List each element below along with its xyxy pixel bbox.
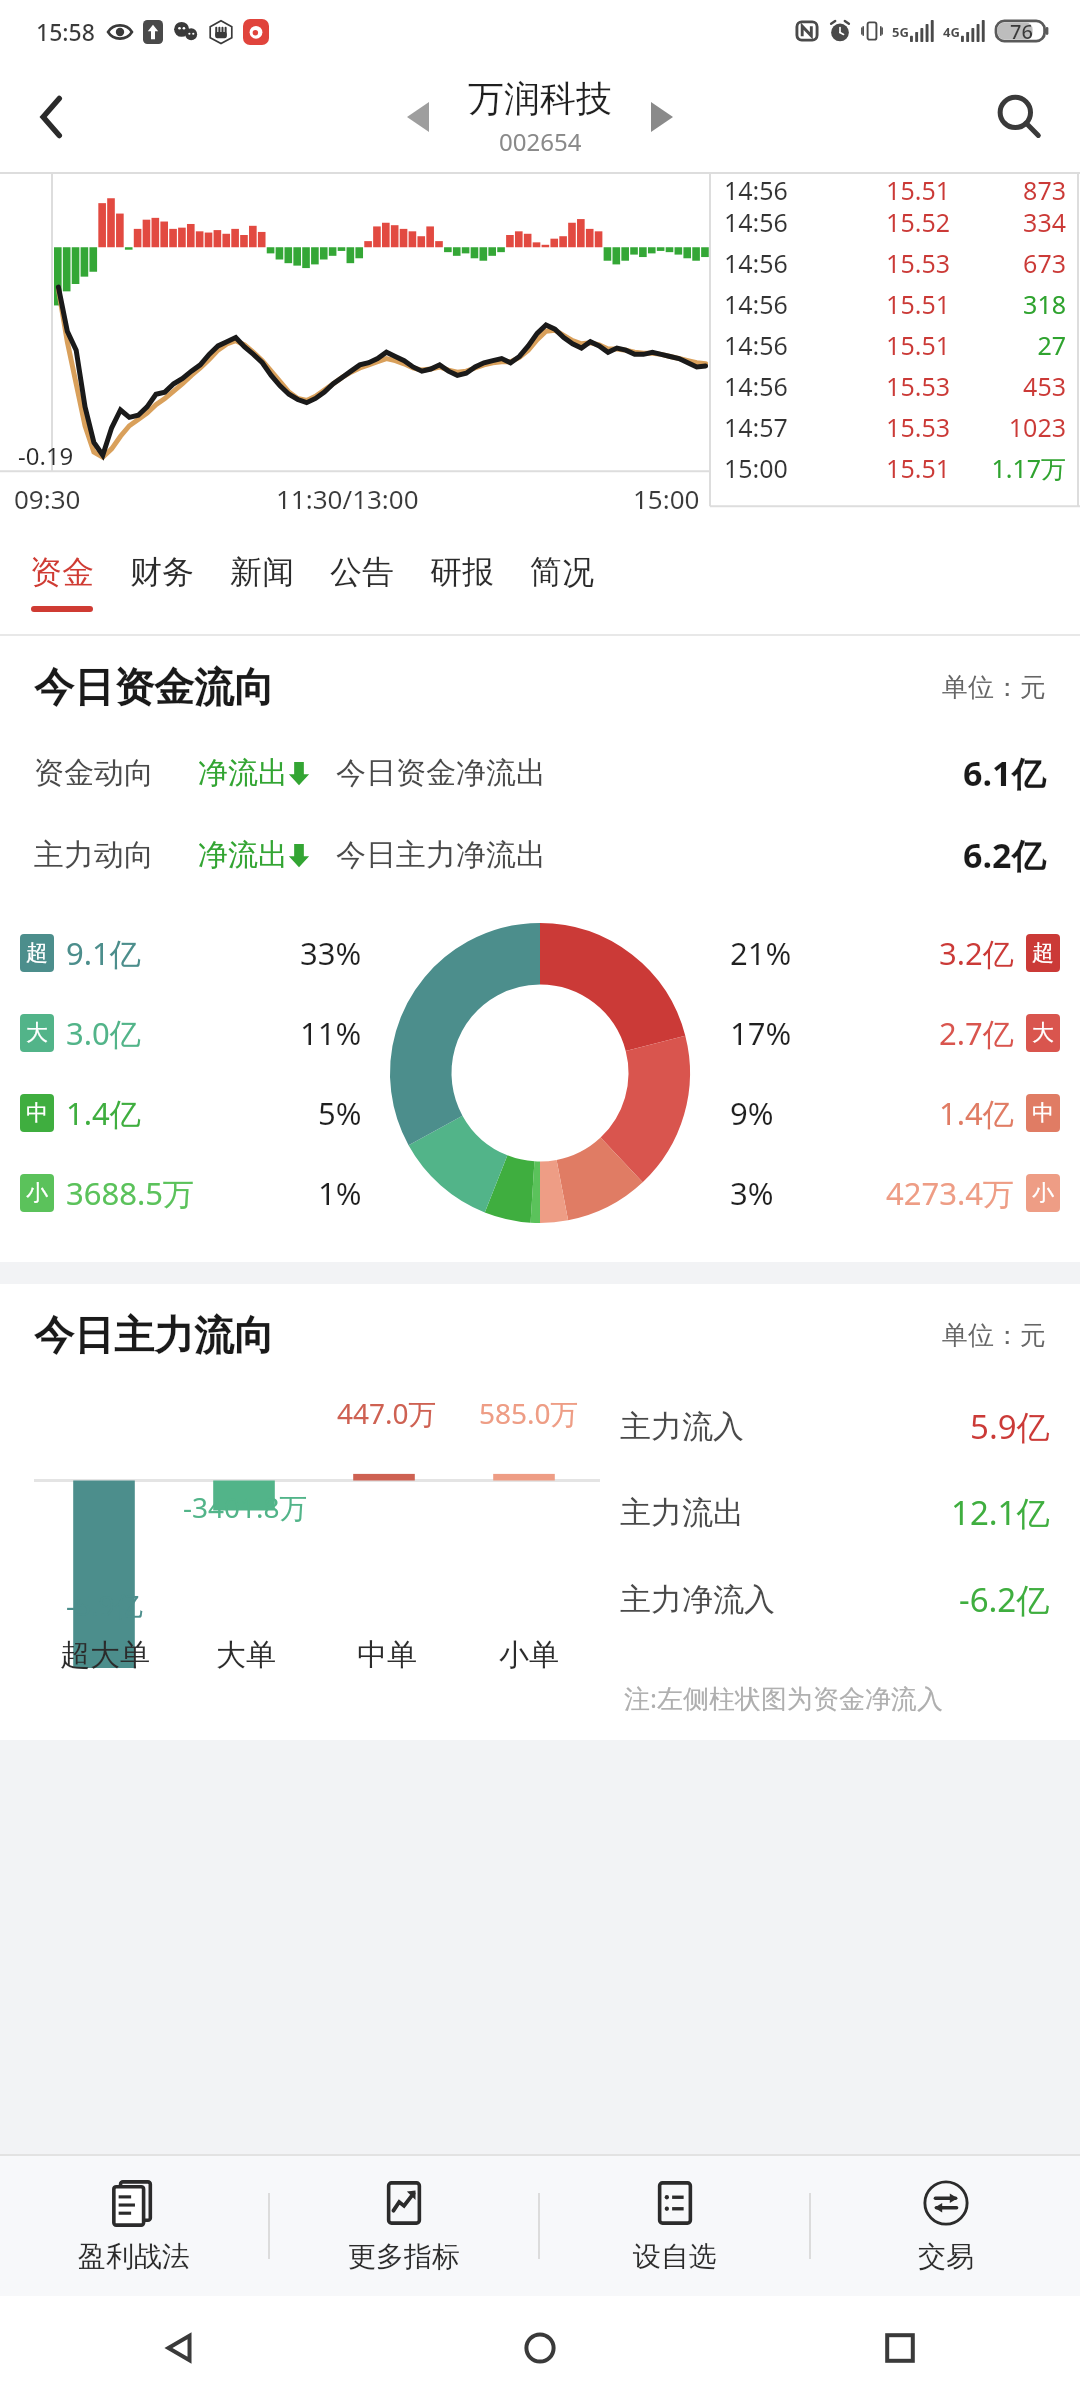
staticText: 主力净流入 bbox=[620, 1580, 775, 1619]
staticText: 002654 bbox=[499, 125, 582, 158]
staticText: 简况 bbox=[530, 552, 594, 592]
staticText: 研报 bbox=[430, 552, 494, 592]
staticText: 15:58 bbox=[36, 16, 95, 47]
staticText: 14:56 bbox=[724, 205, 840, 239]
button[interactable]: Next stock bbox=[634, 89, 690, 145]
staticText: 673 bbox=[956, 246, 1066, 280]
staticText: 3.2亿 bbox=[939, 932, 1014, 974]
staticText: 15.51 bbox=[840, 173, 950, 201]
staticText: 主力动向 bbox=[34, 836, 154, 874]
staticText: 3.0亿 bbox=[66, 1012, 141, 1054]
staticText: 27 bbox=[956, 328, 1066, 362]
staticText: 主力流出 bbox=[620, 1493, 744, 1532]
button[interactable]: 设自选 bbox=[540, 2156, 809, 2296]
staticText: -3401.8万 bbox=[183, 1488, 308, 1526]
button[interactable]: 更多指标 bbox=[270, 2156, 538, 2296]
staticText: 新闻 bbox=[230, 552, 294, 592]
staticText: 15:00 bbox=[633, 481, 700, 516]
staticText: 单位：元 bbox=[942, 671, 1046, 704]
staticText: 1.4亿 bbox=[66, 1092, 141, 1134]
staticText: 1023 bbox=[956, 410, 1066, 444]
staticText: 873 bbox=[956, 173, 1066, 201]
staticText: 中 bbox=[26, 1099, 48, 1127]
staticText: 5.9亿 bbox=[970, 1404, 1050, 1449]
staticText: 盈利战法 bbox=[78, 2239, 190, 2274]
button[interactable]: 资金 bbox=[30, 522, 94, 634]
staticText: 14:56 bbox=[724, 246, 840, 280]
button[interactable]: Search bbox=[984, 82, 1054, 152]
staticText: 大 bbox=[1032, 1019, 1054, 1047]
staticText: 大 bbox=[26, 1019, 48, 1047]
staticText: 1% bbox=[318, 1172, 362, 1214]
staticText: 14:56 bbox=[724, 369, 840, 403]
staticText: 交易 bbox=[918, 2239, 974, 2274]
staticText: 万润科技 bbox=[468, 76, 612, 121]
staticText: 15.53 bbox=[840, 369, 950, 403]
staticText: 9% bbox=[730, 1092, 774, 1134]
button[interactable]: 公告 bbox=[330, 522, 394, 634]
button[interactable]: Back bbox=[20, 85, 84, 149]
staticText: 大单 bbox=[216, 1636, 276, 1674]
staticText: 14:56 bbox=[724, 328, 840, 362]
staticText: 5G bbox=[892, 23, 909, 41]
button[interactable]: 交易 bbox=[811, 2156, 1080, 2296]
staticText: 334 bbox=[956, 205, 1066, 239]
staticText: 4G bbox=[943, 23, 960, 41]
staticText: 超大单 bbox=[60, 1636, 150, 1674]
button[interactable]: Back bbox=[0, 2296, 360, 2400]
staticText: 2.7亿 bbox=[939, 1012, 1014, 1054]
staticText: 12.1亿 bbox=[951, 1490, 1050, 1535]
staticText: 中 bbox=[1032, 1099, 1054, 1127]
staticText: 公告 bbox=[330, 552, 394, 592]
staticText: 33% bbox=[300, 932, 362, 974]
button[interactable]: Home bbox=[360, 2296, 720, 2400]
staticText: 更多指标 bbox=[348, 2239, 460, 2274]
button[interactable]: 财务 bbox=[130, 522, 194, 634]
staticText: 15.53 bbox=[840, 410, 950, 444]
staticText: -5.9亿 bbox=[66, 1586, 143, 1624]
button[interactable]: 盈利战法 bbox=[0, 2156, 268, 2296]
staticText: 453 bbox=[956, 369, 1066, 403]
staticText: 14:56 bbox=[724, 287, 840, 321]
staticText: 超 bbox=[1032, 939, 1054, 967]
staticText: 注:左侧柱状图为资金净流入 bbox=[624, 1680, 943, 1716]
staticText: 小单 bbox=[499, 1636, 559, 1674]
staticText: 1.17万 bbox=[956, 451, 1066, 485]
staticText: 15.52 bbox=[840, 205, 950, 239]
staticText: 21% bbox=[730, 932, 792, 974]
staticText: 15.51 bbox=[840, 287, 950, 321]
button[interactable]: 新闻 bbox=[230, 522, 294, 634]
button[interactable]: 简况 bbox=[530, 522, 594, 634]
staticText: 1.4亿 bbox=[939, 1092, 1014, 1134]
staticText: 9.1亿 bbox=[66, 932, 141, 974]
staticText: 76 bbox=[1010, 18, 1033, 45]
staticText: 4273.4万 bbox=[886, 1172, 1014, 1214]
staticText: 超 bbox=[26, 939, 48, 967]
staticText: 17% bbox=[730, 1012, 792, 1054]
staticText: 11% bbox=[300, 1012, 362, 1054]
staticText: 净流出 bbox=[198, 836, 288, 874]
button[interactable]: Previous stock bbox=[390, 89, 446, 145]
button[interactable]: Recents bbox=[720, 2296, 1080, 2400]
staticText: 小 bbox=[26, 1179, 48, 1207]
button[interactable]: 研报 bbox=[430, 522, 494, 634]
staticText: 15.51 bbox=[840, 451, 950, 485]
staticText: 15.51 bbox=[840, 328, 950, 362]
staticText: 主力流入 bbox=[620, 1407, 744, 1446]
staticText: 3688.5万 bbox=[66, 1172, 194, 1214]
staticText: 财务 bbox=[130, 552, 194, 592]
staticText: 11:30/13:00 bbox=[276, 481, 419, 516]
staticText: 资金动向 bbox=[34, 754, 154, 792]
staticText: 5% bbox=[318, 1092, 362, 1134]
staticText: 3% bbox=[730, 1172, 774, 1214]
staticText: 15.53 bbox=[840, 246, 950, 280]
staticText: 单位：元 bbox=[942, 1319, 1046, 1352]
staticText: 今日资金净流出 bbox=[336, 754, 546, 792]
staticText: 318 bbox=[956, 287, 1066, 321]
staticText: 设自选 bbox=[633, 2239, 717, 2274]
staticText: 15:00 bbox=[724, 451, 840, 485]
staticText: 14:56 bbox=[724, 173, 840, 201]
staticText: 净流出 bbox=[198, 754, 288, 792]
staticText: 小 bbox=[1032, 1179, 1054, 1207]
staticText: -0.19 bbox=[18, 439, 74, 472]
